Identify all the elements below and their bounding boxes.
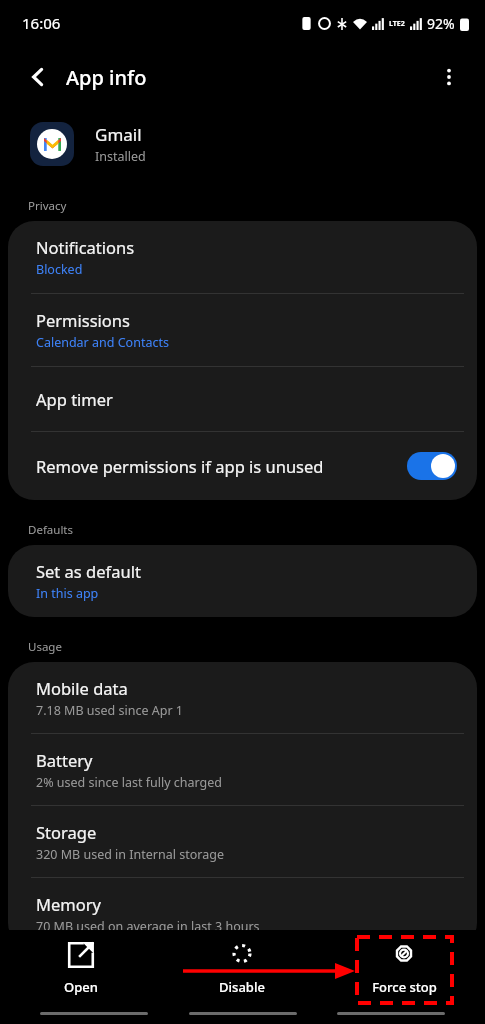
- button[interactable]: Notifications: [8, 221, 477, 293]
- button[interactable]: App timer: [8, 367, 477, 431]
- staticText: Memory: [36, 893, 101, 915]
- staticText: Permissions: [36, 309, 130, 331]
- staticText: Blocked: [36, 261, 83, 278]
- button[interactable]: Remove permissions if app is unused: [8, 432, 477, 500]
- staticText: 320 MB used in Internal storage: [36, 846, 224, 863]
- button[interactable]: Gmail: [0, 108, 485, 180]
- staticText: Set as default: [36, 560, 141, 582]
- button[interactable]: Storage: [8, 806, 477, 877]
- button[interactable]: Disable: [161, 930, 323, 1002]
- button[interactable]: Set as default: [8, 545, 477, 617]
- staticText: Installed: [95, 148, 146, 165]
- staticText: Mobile data: [36, 677, 128, 699]
- staticText: In this app: [36, 585, 99, 602]
- button[interactable]: Force stop: [323, 930, 485, 1002]
- button[interactable]: Remove permissions toggle: [407, 452, 457, 480]
- button[interactable]: Memory: [8, 878, 477, 949]
- staticText: 2% used since last fully charged: [36, 774, 223, 791]
- button[interactable]: Back: [16, 55, 60, 99]
- staticText: App timer: [36, 388, 113, 410]
- staticText: 92%: [427, 14, 455, 33]
- button[interactable]: Open: [0, 930, 161, 1002]
- staticText: Force stop: [372, 978, 437, 996]
- button[interactable]: Mobile data: [8, 662, 477, 733]
- staticText: Gmail: [95, 123, 142, 146]
- staticText: Remove permissions if app is unused: [36, 455, 324, 477]
- staticText: Notifications: [36, 236, 135, 258]
- staticText: Storage: [36, 821, 97, 843]
- button[interactable]: Permissions: [8, 294, 477, 366]
- staticText: App info: [66, 64, 147, 91]
- staticText: Privacy: [28, 198, 67, 214]
- staticText: 16:06: [22, 13, 61, 33]
- staticText: Defaults: [28, 522, 74, 538]
- staticText: Disable: [219, 978, 265, 996]
- staticText: 70 MB used on average in last 3 hours: [36, 918, 260, 935]
- button[interactable]: Battery: [8, 734, 477, 805]
- staticText: LTE2: [389, 19, 405, 29]
- staticText: Usage: [28, 639, 62, 655]
- staticText: Battery: [36, 749, 93, 771]
- staticText: Calendar and Contacts: [36, 334, 169, 351]
- staticText: 7.18 MB used since Apr 1: [36, 702, 183, 719]
- button[interactable]: More options: [427, 55, 471, 99]
- staticText: Open: [64, 978, 98, 996]
